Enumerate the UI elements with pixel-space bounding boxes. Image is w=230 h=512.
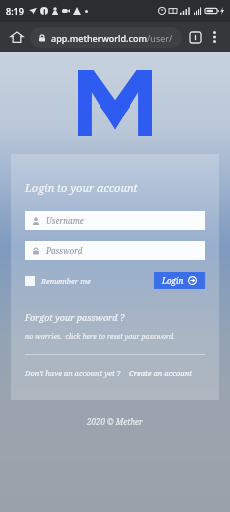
staticText: Login [162,275,184,286]
staticText: Login to your account [25,180,138,195]
staticText: Forgot your password ? [25,311,125,323]
button[interactable]: Create an account [129,368,192,378]
button[interactable]: Remember me [25,276,91,286]
staticText: /user/ [147,32,173,44]
staticText: app.metherworld.com [51,32,147,44]
button[interactable]: no worries. click here to reset your pas… [25,332,175,342]
button[interactable]: app.metherworld.com [30,27,182,48]
button[interactable]: Username [25,211,205,230]
staticText: 8:19 [6,5,24,17]
button[interactable]: Login [154,272,205,289]
staticText: Username [46,215,84,226]
button[interactable]: Password [25,241,205,260]
staticText: Don't have an account yet ? [25,368,121,378]
staticText: Password [46,245,83,256]
button[interactable]: More options [205,28,223,46]
staticText: Remember me [41,276,91,286]
button[interactable]: Tabs [185,27,205,47]
staticText: 2020 © Mether [87,416,143,427]
button[interactable]: Home [7,27,27,47]
